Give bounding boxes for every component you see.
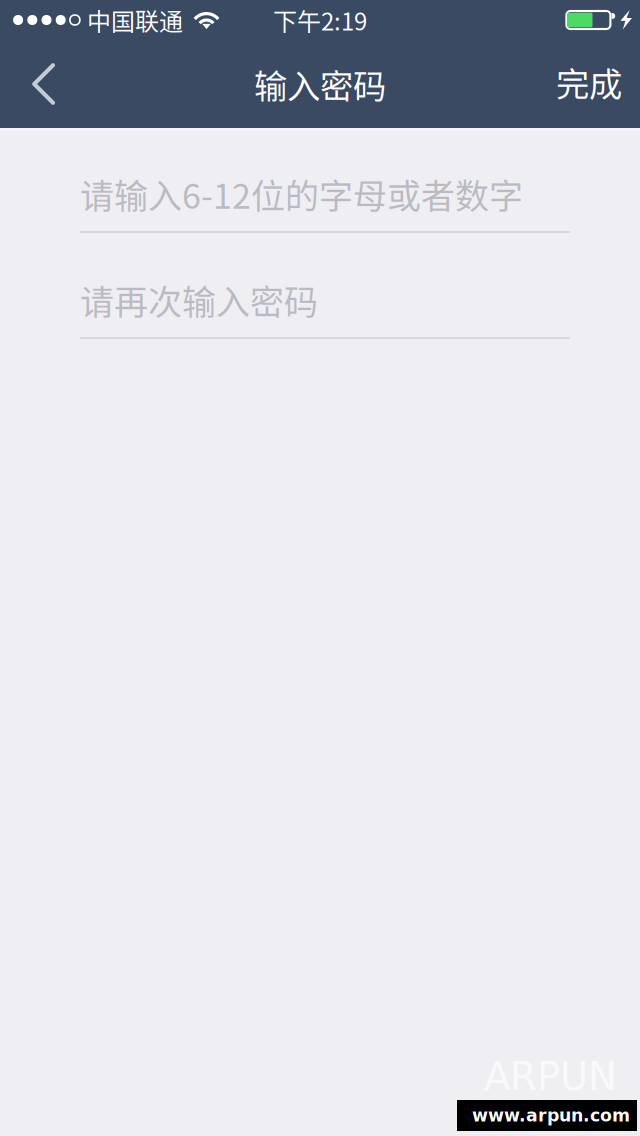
button[interactable]: 请再次输入密码 <box>80 263 570 339</box>
staticText: 下午2:19 <box>273 3 367 37</box>
staticText: 请输入6-12位的字母或者数字 <box>80 169 523 219</box>
button[interactable]: 完成 <box>526 40 640 128</box>
button[interactable]: Back <box>0 40 85 128</box>
staticText: www.arpun.com <box>472 1105 630 1126</box>
button[interactable]: 请输入6-12位的字母或者数字 <box>80 157 570 233</box>
staticText: ARPUN <box>484 1054 617 1099</box>
staticText: 中国联通 <box>87 3 183 37</box>
staticText: 完成 <box>556 58 622 106</box>
staticText: 请再次输入密码 <box>80 275 318 325</box>
staticText: 输入密码 <box>254 60 386 108</box>
